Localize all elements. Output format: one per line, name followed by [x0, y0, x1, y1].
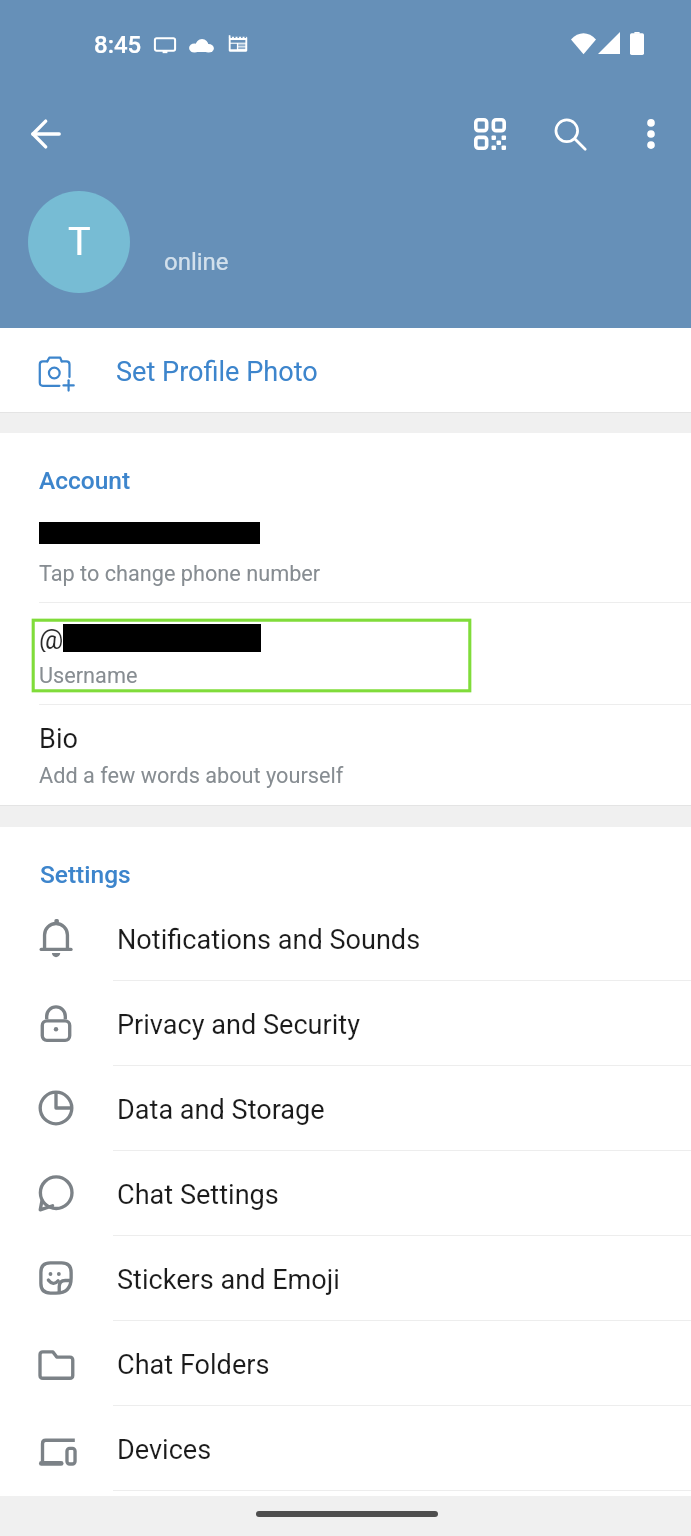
staticText: Tap to change phone number	[39, 561, 321, 586]
button[interactable]: Bio	[0, 705, 691, 805]
staticText: Account	[39, 466, 131, 495]
button[interactable]: Data and Storage	[0, 1065, 691, 1150]
button[interactable]: Privacy and Security	[0, 980, 691, 1065]
staticText: Chat Settings	[117, 1179, 279, 1211]
button[interactable]: Set Profile Photo	[0, 328, 691, 412]
button[interactable]: Tap to change phone number	[0, 502, 691, 602]
staticText: Chat Folders	[117, 1349, 270, 1381]
staticText: Settings	[40, 860, 131, 889]
staticText: Bio	[39, 723, 78, 755]
button[interactable]: More options	[607, 90, 691, 178]
button[interactable]: Notifications and Sounds	[0, 895, 691, 980]
staticText: Devices	[117, 1434, 212, 1466]
staticText: Stickers and Emoji	[117, 1264, 340, 1296]
button[interactable]: @	[0, 603, 691, 704]
button[interactable]: Devices	[0, 1405, 691, 1490]
staticText: Set Profile Photo	[116, 356, 318, 388]
staticText: T	[68, 220, 91, 265]
button[interactable]: Search	[526, 90, 614, 178]
staticText: 8:45	[94, 31, 142, 59]
staticText: Username	[39, 663, 138, 688]
staticText: Privacy and Security	[117, 1009, 360, 1041]
button[interactable]: Chat Settings	[0, 1150, 691, 1235]
button[interactable]: QR code	[446, 90, 534, 178]
button[interactable]: Back	[2, 90, 90, 178]
button[interactable]: Chat Folders	[0, 1320, 691, 1405]
button[interactable]: Stickers and Emoji	[0, 1235, 691, 1320]
staticText: @	[39, 624, 64, 652]
staticText: online	[164, 248, 229, 276]
staticText: Add a few words about yourself	[39, 763, 344, 788]
staticText: Notifications and Sounds	[117, 924, 421, 956]
button[interactable]: T	[28, 191, 130, 293]
staticText: Data and Storage	[117, 1094, 325, 1126]
